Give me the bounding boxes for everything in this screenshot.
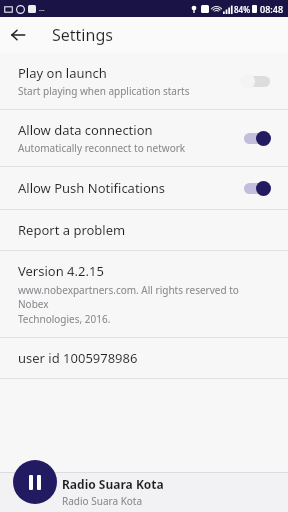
button[interactable]: Play on launch [0, 53, 288, 109]
staticText: 08:48 [260, 3, 284, 15]
staticText: Radio Suara Kota [62, 494, 143, 508]
staticText: Start playing when application starts [18, 84, 190, 98]
button[interactable]: Toggle off [240, 71, 274, 91]
button[interactable]: Allow data connection [0, 110, 288, 166]
button[interactable]: user id 1005978986 [0, 338, 288, 378]
staticText: Version 4.2.15 [18, 262, 104, 280]
button[interactable]: Report a problem [0, 210, 288, 250]
button[interactable]: Toggle on [240, 178, 274, 198]
button[interactable]: Version 4.2.15 [0, 251, 288, 337]
staticText: Automatically reconnect to network [18, 141, 186, 155]
staticText: ... [39, 4, 45, 14]
staticText: Allow Push Notifications [18, 179, 166, 197]
staticText: Play on launch [18, 64, 107, 82]
staticText: user id 1005978986 [18, 349, 138, 367]
staticText: Allow data connection [18, 121, 153, 139]
staticText: Radio Suara Kota [62, 476, 164, 492]
button[interactable]: Allow Push Notifications [0, 167, 288, 209]
staticText: Settings [52, 24, 113, 46]
staticText: 84% [234, 4, 250, 15]
staticText: Technologies, 2016. [18, 312, 111, 326]
button[interactable]: Radio Suara Kota [0, 472, 288, 512]
staticText: Report a problem [18, 221, 126, 239]
button[interactable]: Toggle on [240, 128, 274, 148]
staticText: www.nobexpartners.com. All rights reserv… [18, 283, 270, 311]
button[interactable]: Pause [13, 460, 57, 504]
button[interactable]: Back [0, 17, 36, 53]
